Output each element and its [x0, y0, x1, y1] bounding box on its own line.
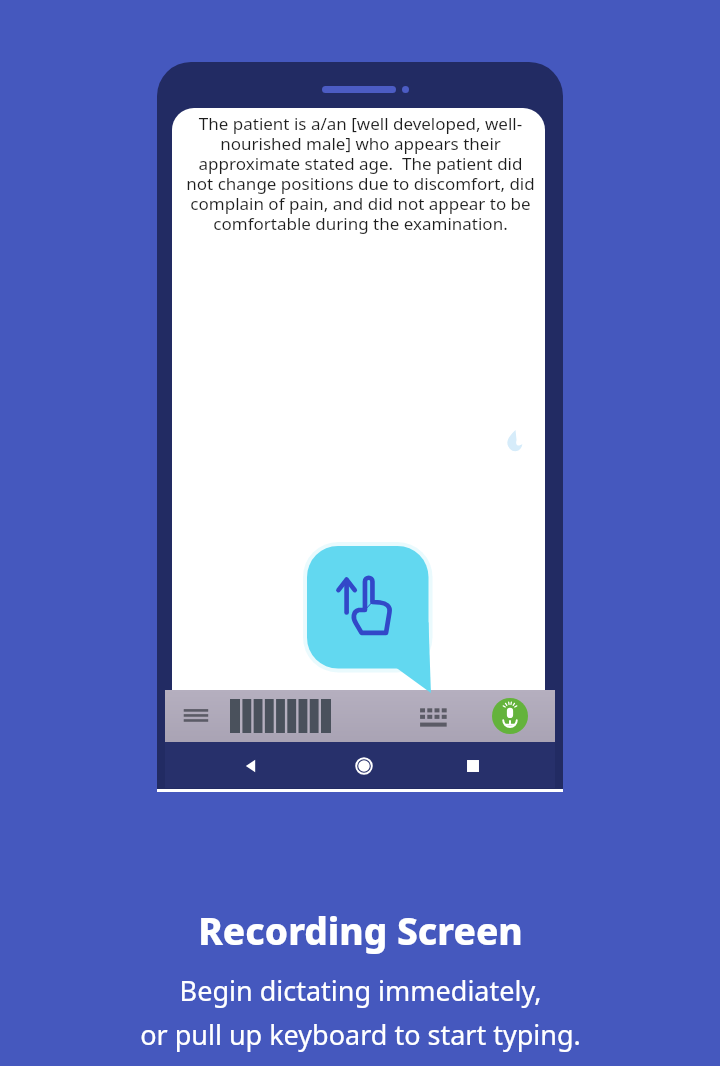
staticText: Begin dictating immediately, or pull up … [140, 972, 581, 1052]
staticText: Recording Screen [198, 905, 523, 955]
button[interactable]: Home [351, 753, 377, 779]
button[interactable]: Record [492, 698, 528, 734]
button[interactable]: Back [238, 753, 264, 779]
button[interactable]: Recents [460, 753, 486, 779]
button[interactable]: Keyboard [414, 704, 452, 728]
button[interactable]: Menu [181, 702, 215, 730]
staticText: The patient is a/an [well developed, wel… [186, 112, 535, 235]
